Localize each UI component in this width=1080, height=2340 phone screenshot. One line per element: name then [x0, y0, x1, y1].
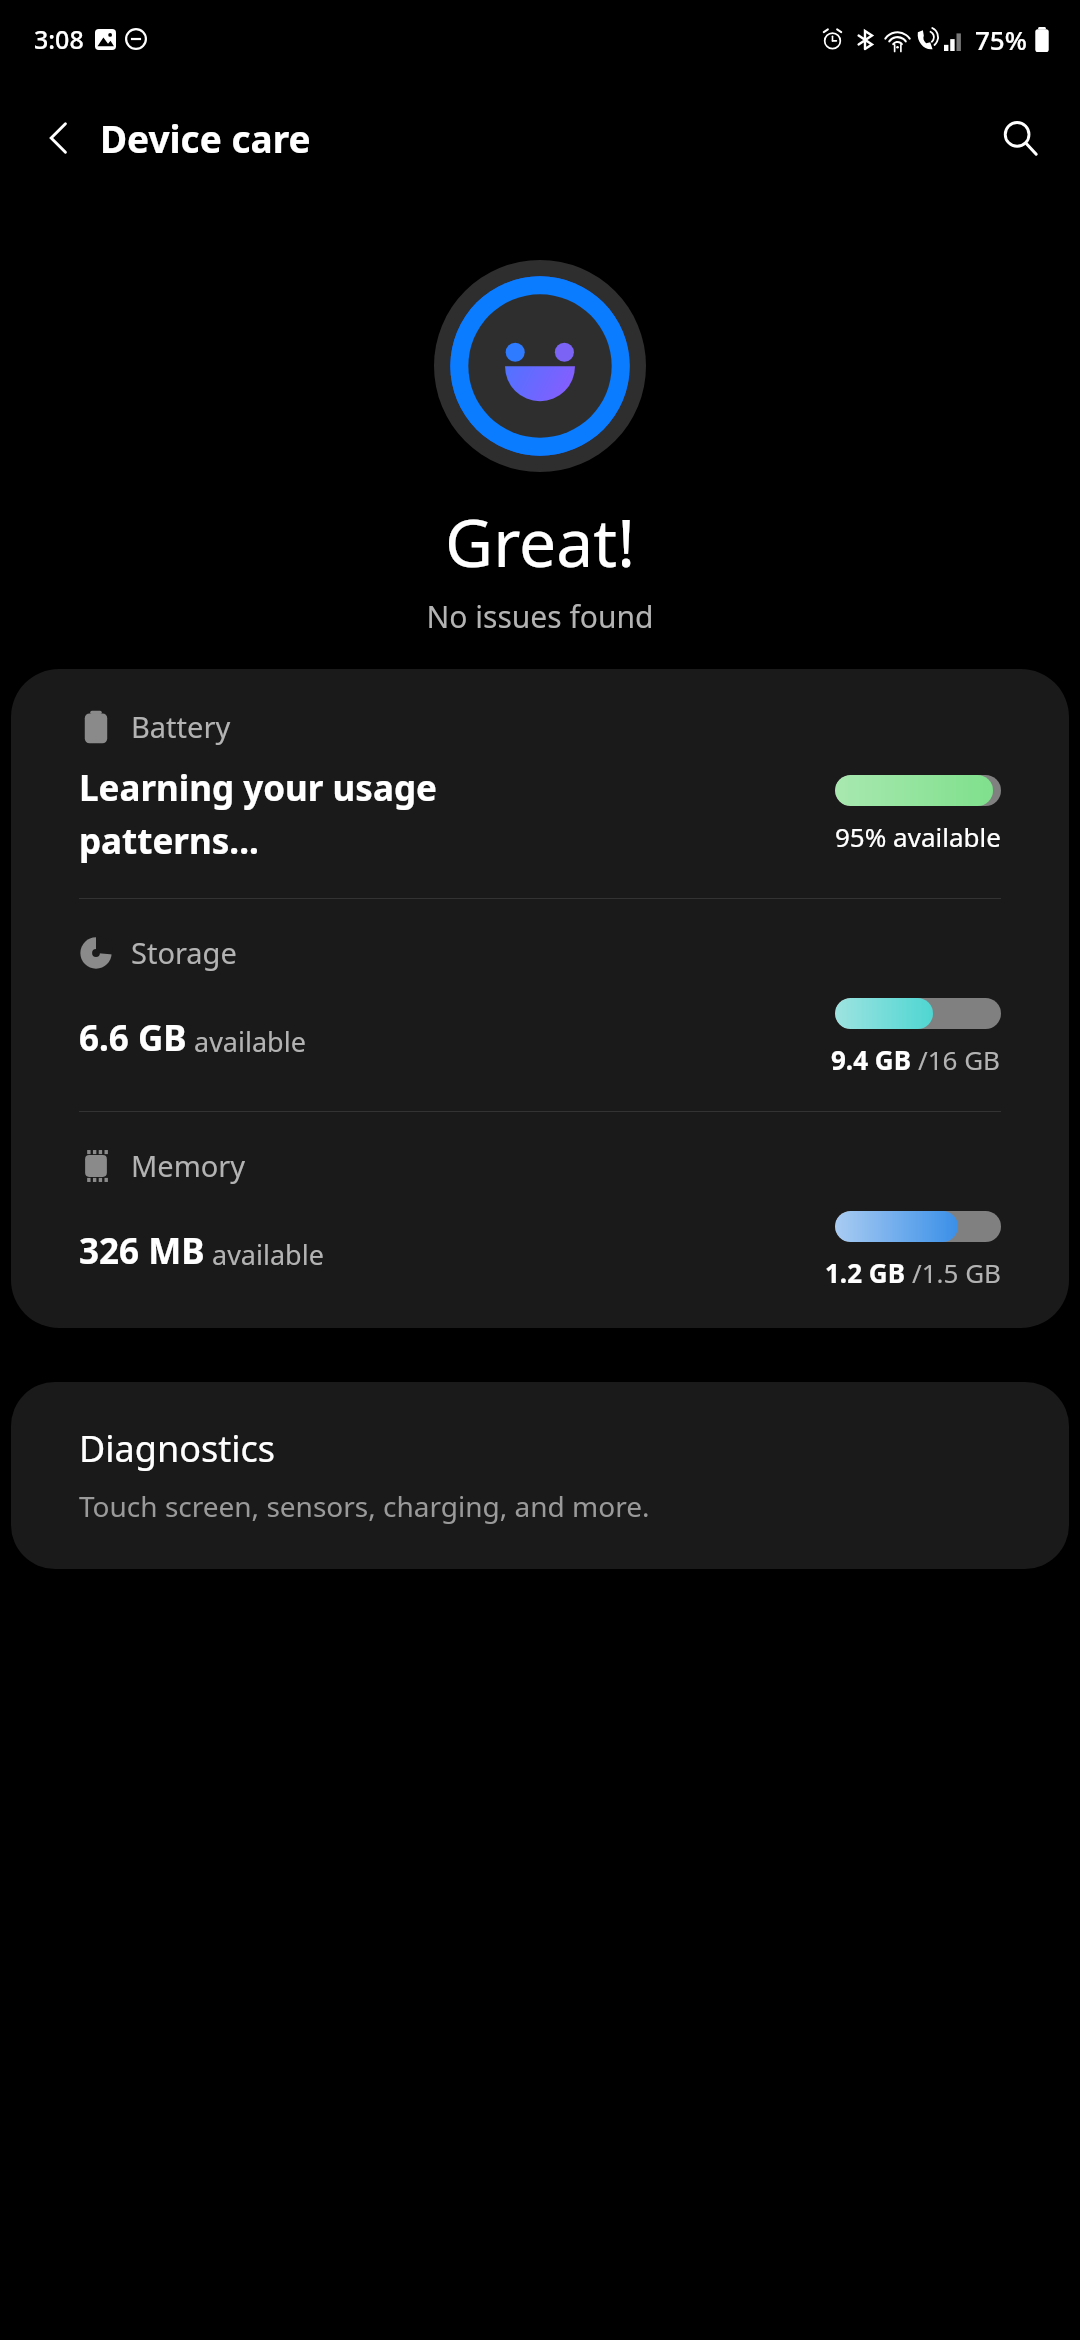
staticText: Great! [0, 496, 1080, 586]
button[interactable]: Search [988, 106, 1052, 170]
staticText: 326 MB [79, 1227, 205, 1275]
staticText: Diagnostics [79, 1424, 275, 1473]
button[interactable]: Back [30, 108, 90, 168]
staticText: 3:08 [34, 22, 84, 56]
staticText: Storage [131, 933, 237, 972]
staticText: Memory [131, 1146, 246, 1185]
staticText: available [194, 1023, 306, 1060]
staticText: Battery [131, 707, 231, 746]
button[interactable]: Diagnostics [11, 1382, 1069, 1569]
staticText: No issues found [0, 596, 1080, 637]
staticText: Learning your usage patterns... [79, 764, 437, 864]
staticText: /1.5 GB [912, 1255, 1001, 1290]
button[interactable]: Battery [11, 703, 1069, 868]
staticText: 6.6 GB [79, 1014, 187, 1062]
staticText: 95% available [835, 819, 1001, 854]
staticText: Touch screen, sensors, charging, and mor… [79, 1487, 650, 1525]
staticText: 9.4 GB [831, 1042, 918, 1077]
button[interactable]: Storage [11, 929, 1069, 1081]
staticText: available [212, 1236, 324, 1273]
staticText: Device care [100, 113, 311, 163]
button[interactable]: Memory [11, 1142, 1069, 1294]
staticText: 75% [975, 22, 1027, 57]
staticText: /16 GB [918, 1042, 1001, 1077]
staticText: 1.2 GB [825, 1255, 912, 1290]
